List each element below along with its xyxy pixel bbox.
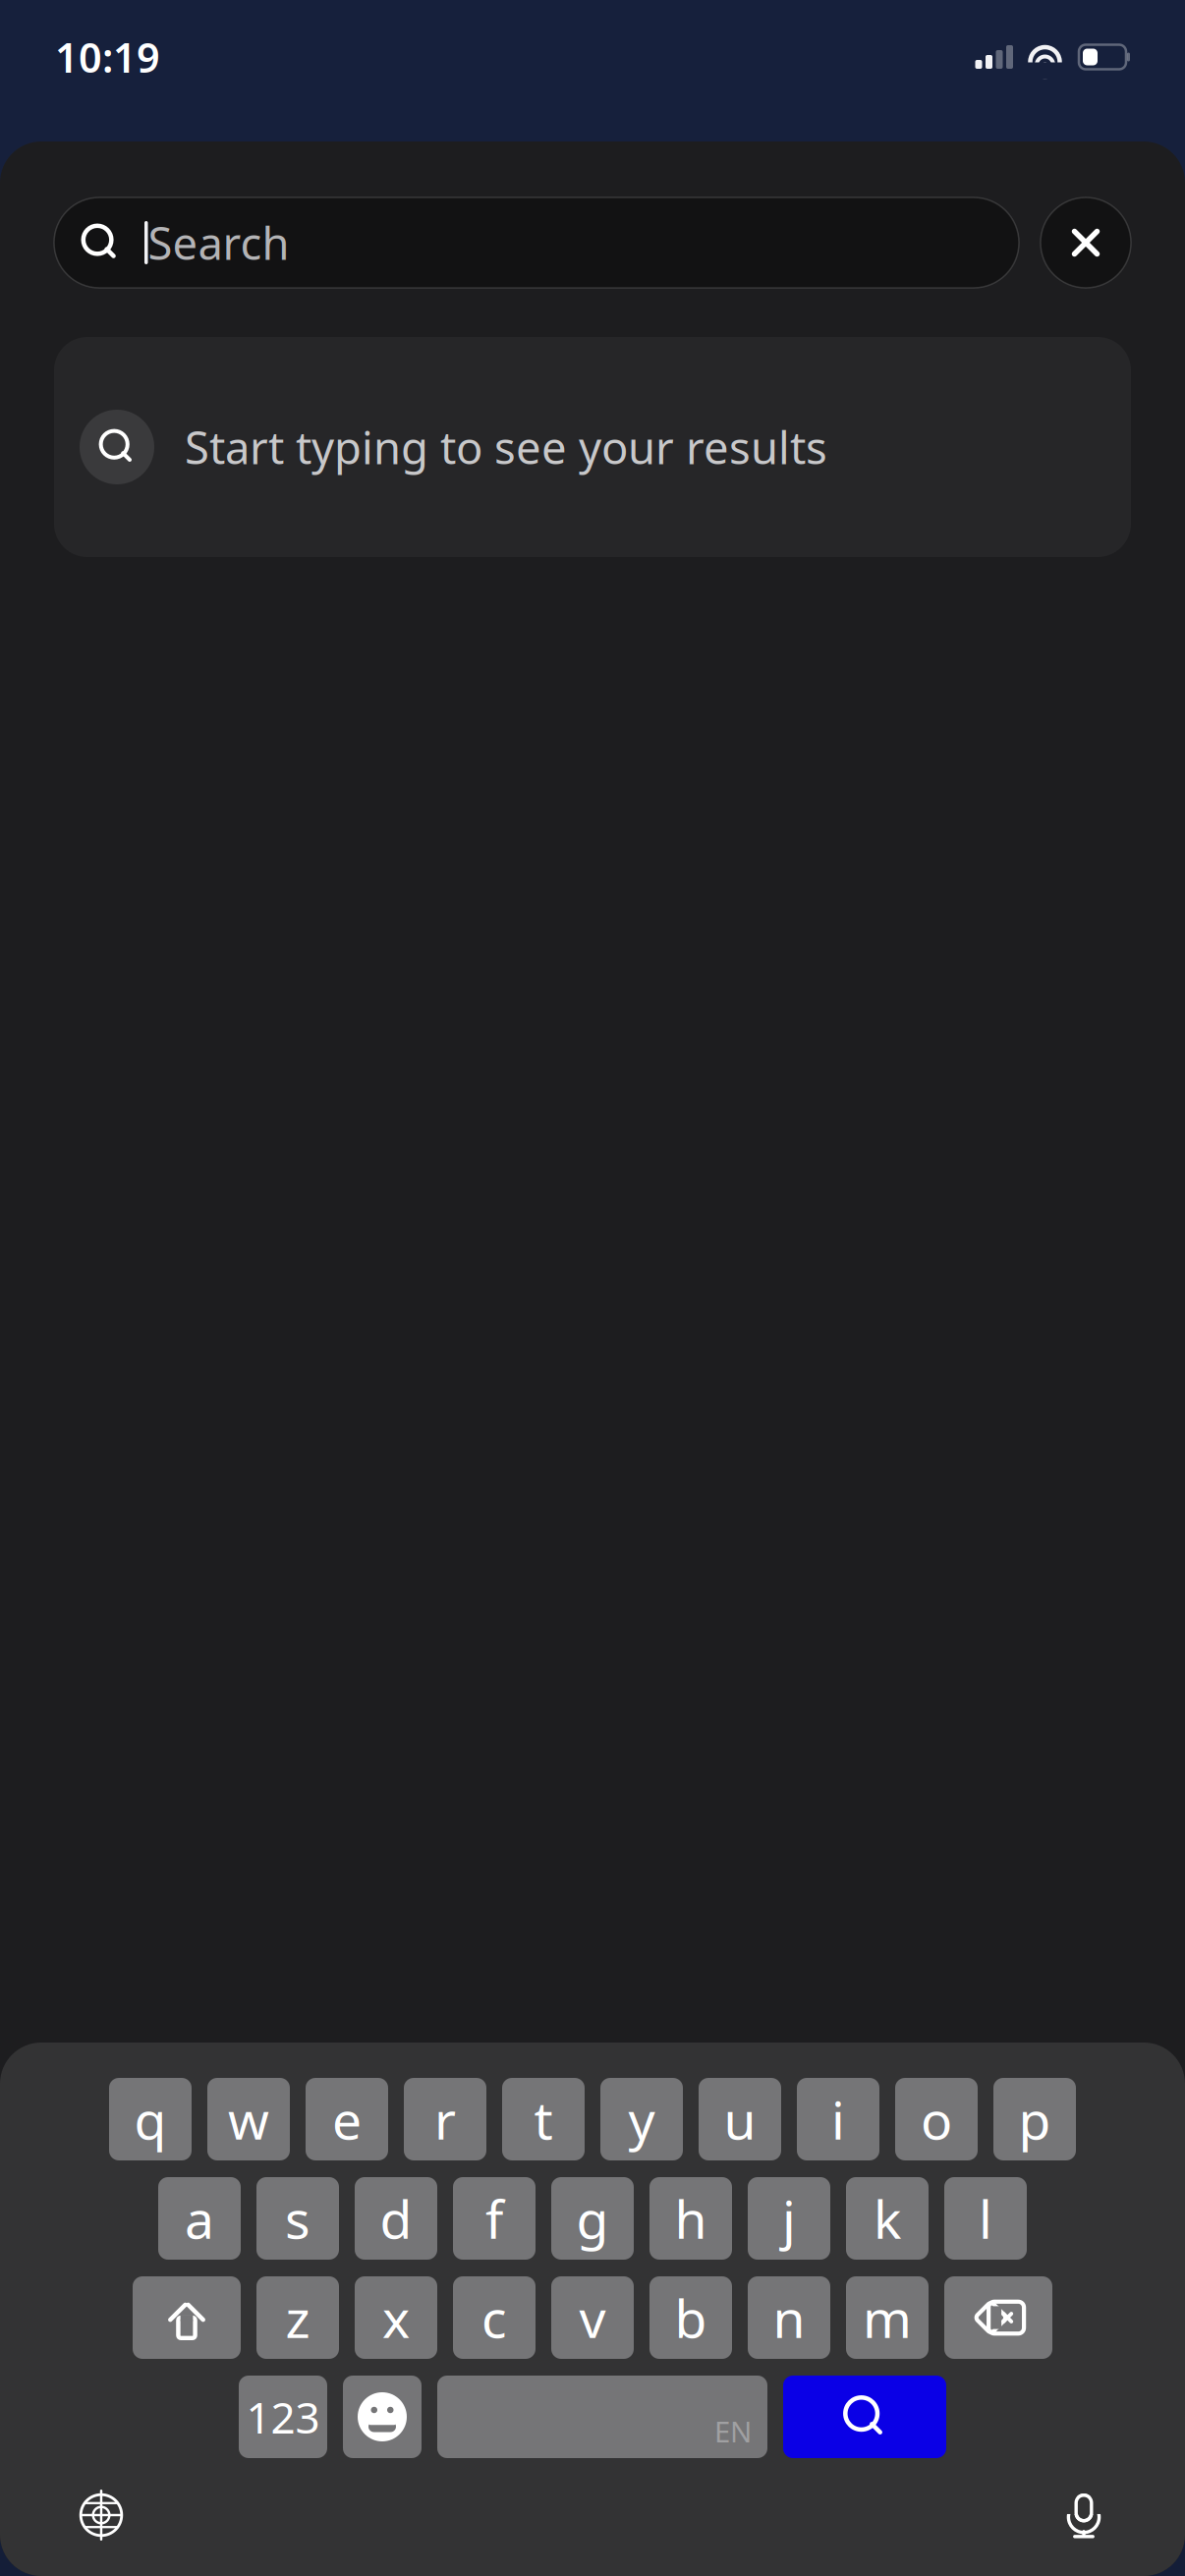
button[interactable]: r: [404, 2078, 486, 2160]
button[interactable]: l: [944, 2177, 1027, 2260]
staticText: x: [382, 2283, 410, 2352]
staticText: t: [534, 2084, 553, 2154]
button[interactable]: Start typing to see your results: [54, 337, 1131, 557]
staticText: Search: [148, 213, 289, 272]
staticText: q: [134, 2084, 167, 2154]
staticText: n: [773, 2283, 805, 2352]
staticText: f: [485, 2184, 503, 2253]
staticText: j: [782, 2184, 796, 2253]
button[interactable]: s: [256, 2177, 339, 2260]
staticText: y: [628, 2084, 655, 2154]
button[interactable]: t: [502, 2078, 585, 2160]
button[interactable]: m: [846, 2276, 929, 2359]
staticText: b: [675, 2283, 707, 2352]
button[interactable]: Shift: [133, 2276, 241, 2359]
button[interactable]: Emoji: [343, 2376, 422, 2458]
staticText: i: [831, 2084, 845, 2154]
button[interactable]: Next keyboard: [54, 2468, 148, 2562]
button[interactable]: j: [748, 2177, 830, 2260]
staticText: k: [874, 2184, 901, 2253]
button[interactable]: Close search: [1041, 197, 1131, 288]
staticText: v: [579, 2283, 606, 2352]
button[interactable]: u: [699, 2078, 781, 2160]
button[interactable]: y: [600, 2078, 683, 2160]
button[interactable]: 123: [239, 2376, 327, 2458]
staticText: s: [285, 2184, 310, 2253]
button[interactable]: d: [355, 2177, 437, 2260]
staticText: m: [863, 2283, 912, 2352]
staticText: u: [724, 2084, 756, 2154]
staticText: d: [380, 2184, 412, 2253]
staticText: 123: [246, 2388, 320, 2446]
staticText: l: [979, 2184, 992, 2253]
button[interactable]: Delete: [944, 2276, 1052, 2359]
button[interactable]: x: [355, 2276, 437, 2359]
button[interactable]: n: [748, 2276, 830, 2359]
button[interactable]: a: [158, 2177, 241, 2260]
button[interactable]: f: [453, 2177, 536, 2260]
staticText: p: [1018, 2084, 1051, 2154]
button[interactable]: Search: [783, 2376, 946, 2458]
button[interactable]: q: [109, 2078, 192, 2160]
button[interactable]: c: [453, 2276, 536, 2359]
staticText: a: [185, 2184, 214, 2253]
staticText: 10:19: [55, 30, 160, 84]
staticText: z: [285, 2283, 310, 2352]
staticText: Start typing to see your results: [185, 417, 827, 477]
button[interactable]: o: [895, 2078, 978, 2160]
button[interactable]: k: [846, 2177, 929, 2260]
staticText: w: [228, 2084, 269, 2154]
button[interactable]: e: [306, 2078, 388, 2160]
button[interactable]: g: [551, 2177, 634, 2260]
button[interactable]: b: [649, 2276, 732, 2359]
button[interactable]: z: [256, 2276, 339, 2359]
button[interactable]: Dictate: [1037, 2468, 1131, 2562]
button[interactable]: v: [551, 2276, 634, 2359]
staticText: h: [675, 2184, 707, 2253]
button[interactable]: p: [993, 2078, 1076, 2160]
button[interactable]: i: [797, 2078, 879, 2160]
staticText: r: [434, 2084, 456, 2154]
staticText: g: [576, 2184, 609, 2253]
button[interactable]: w: [207, 2078, 290, 2160]
staticText: EN: [714, 2412, 752, 2450]
staticText: e: [332, 2084, 362, 2154]
staticText: c: [481, 2283, 507, 2352]
button[interactable]: h: [649, 2177, 732, 2260]
staticText: o: [921, 2084, 952, 2154]
button[interactable]: Space: [437, 2376, 767, 2458]
